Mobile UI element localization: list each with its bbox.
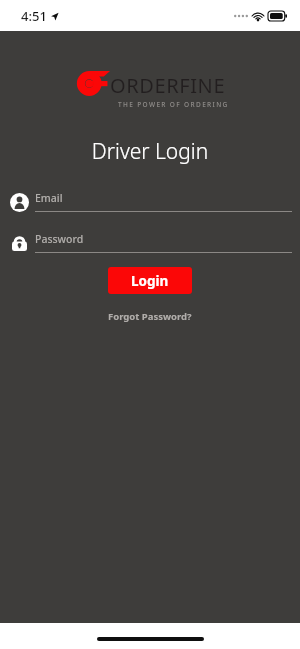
staticText: Password [35,232,84,246]
staticText: THE POWER OF ORDERING [118,100,229,109]
staticText: Email [35,191,63,205]
button[interactable]: Forgot Password? [102,307,198,326]
staticText: Driver Login [0,137,300,166]
other: Password [9,233,29,253]
button[interactable]: Email [9,191,292,212]
staticText: Forgot Password? [108,310,192,323]
staticText: Login [131,272,169,290]
staticText: 4:51 [21,7,47,25]
button[interactable]: Password [9,232,292,253]
button[interactable]: Login [108,267,192,294]
staticText: ORDERFINE [110,72,226,99]
other: Email [9,192,29,212]
